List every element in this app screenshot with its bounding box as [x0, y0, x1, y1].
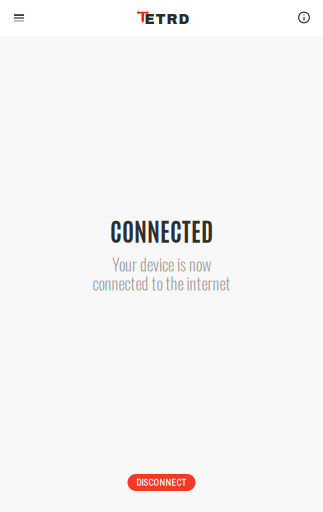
staticText: CONNECTED: [110, 214, 213, 246]
button[interactable]: Info: [285, 0, 323, 36]
button[interactable]: Menu: [0, 0, 38, 36]
staticText: connected to the internet: [92, 271, 230, 295]
button[interactable]: DISCONNECT: [127, 474, 195, 491]
staticText: DISCONNECT: [136, 477, 186, 488]
staticText: ETRD: [144, 12, 189, 27]
staticText: Your device is now: [112, 252, 211, 276]
